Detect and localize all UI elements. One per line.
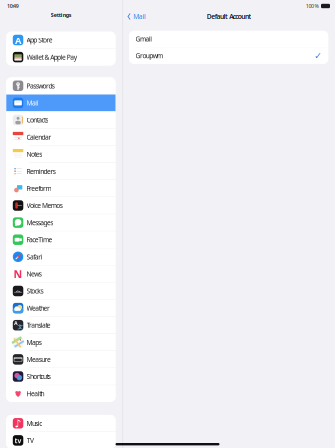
- staticText: App Store: [26, 36, 53, 44]
- button[interactable]: FaceTime: [6, 231, 115, 248]
- button[interactable]: Groupwm: [129, 47, 328, 64]
- button[interactable]: A: [6, 32, 115, 48]
- button[interactable]: Messages: [6, 214, 115, 231]
- staticText: FaceTime: [26, 235, 52, 244]
- staticText: Translate: [26, 321, 51, 330]
- staticText: Voice Memos: [26, 201, 63, 210]
- staticText: 100 %: [306, 2, 318, 10]
- button[interactable]: Shortcuts: [6, 368, 115, 385]
- staticText: Maps: [26, 338, 42, 347]
- staticText: Calendar: [26, 133, 51, 142]
- button[interactable]: Gmail: [129, 31, 328, 47]
- staticText: News: [26, 269, 42, 278]
- button[interactable]: Safari: [6, 248, 115, 265]
- staticText: Wallet & Apple Pay: [26, 53, 77, 62]
- button[interactable]: Calendar: [6, 129, 115, 145]
- staticText: 10:49: [7, 2, 19, 10]
- staticText: Contacts: [26, 116, 48, 124]
- button[interactable]: Measure: [6, 351, 115, 368]
- button[interactable]: Mail: [6, 95, 115, 111]
- staticText: Music: [26, 419, 42, 428]
- button[interactable]: Maps: [6, 334, 115, 351]
- button[interactable]: Stocks: [6, 283, 115, 299]
- button[interactable]: Weather: [6, 300, 115, 316]
- staticText: Settings: [51, 11, 72, 18]
- staticText: Default Account: [207, 12, 251, 21]
- button[interactable]: ♪: [6, 415, 115, 432]
- staticText: TV: [26, 436, 34, 445]
- button[interactable]: Passwords: [6, 77, 115, 94]
- button[interactable]: Voice Memos: [6, 197, 115, 214]
- staticText: Measure: [26, 355, 51, 364]
- staticText: Mail: [133, 12, 146, 21]
- staticText: Mail: [26, 98, 39, 107]
- staticText: A: [14, 320, 18, 327]
- button[interactable]: A: [6, 317, 115, 334]
- staticText: Weather: [26, 304, 50, 313]
- staticText: Freeform: [26, 184, 51, 193]
- staticText: Groupwm: [136, 51, 163, 60]
- staticText: Shortcuts: [26, 372, 51, 381]
- staticText: tv: [15, 436, 22, 445]
- staticText: 文: [17, 324, 22, 330]
- staticText: Stocks: [26, 287, 44, 295]
- staticText: A: [15, 34, 21, 46]
- staticText: Notes: [26, 150, 42, 159]
- button[interactable]: tv: [6, 432, 115, 448]
- button[interactable]: Health: [6, 385, 115, 402]
- staticText: Reminders: [26, 167, 56, 176]
- staticText: Safari: [26, 252, 43, 261]
- button[interactable]: Contacts: [6, 112, 115, 128]
- staticText: Health: [26, 389, 45, 398]
- button[interactable]: Reminders: [6, 163, 115, 180]
- staticText: Gmail: [136, 34, 152, 43]
- button[interactable]: Notes: [6, 146, 115, 163]
- button[interactable]: Mail: [123, 12, 163, 21]
- staticText: ✓: [314, 50, 322, 61]
- staticText: Messages: [26, 218, 53, 227]
- staticText: N: [14, 267, 23, 281]
- staticText: Passwords: [26, 81, 55, 90]
- staticText: ♪: [15, 417, 22, 429]
- button[interactable]: Wallet & Apple Pay: [6, 49, 115, 65]
- button[interactable]: N: [6, 266, 115, 282]
- button[interactable]: Freeform: [6, 180, 115, 197]
